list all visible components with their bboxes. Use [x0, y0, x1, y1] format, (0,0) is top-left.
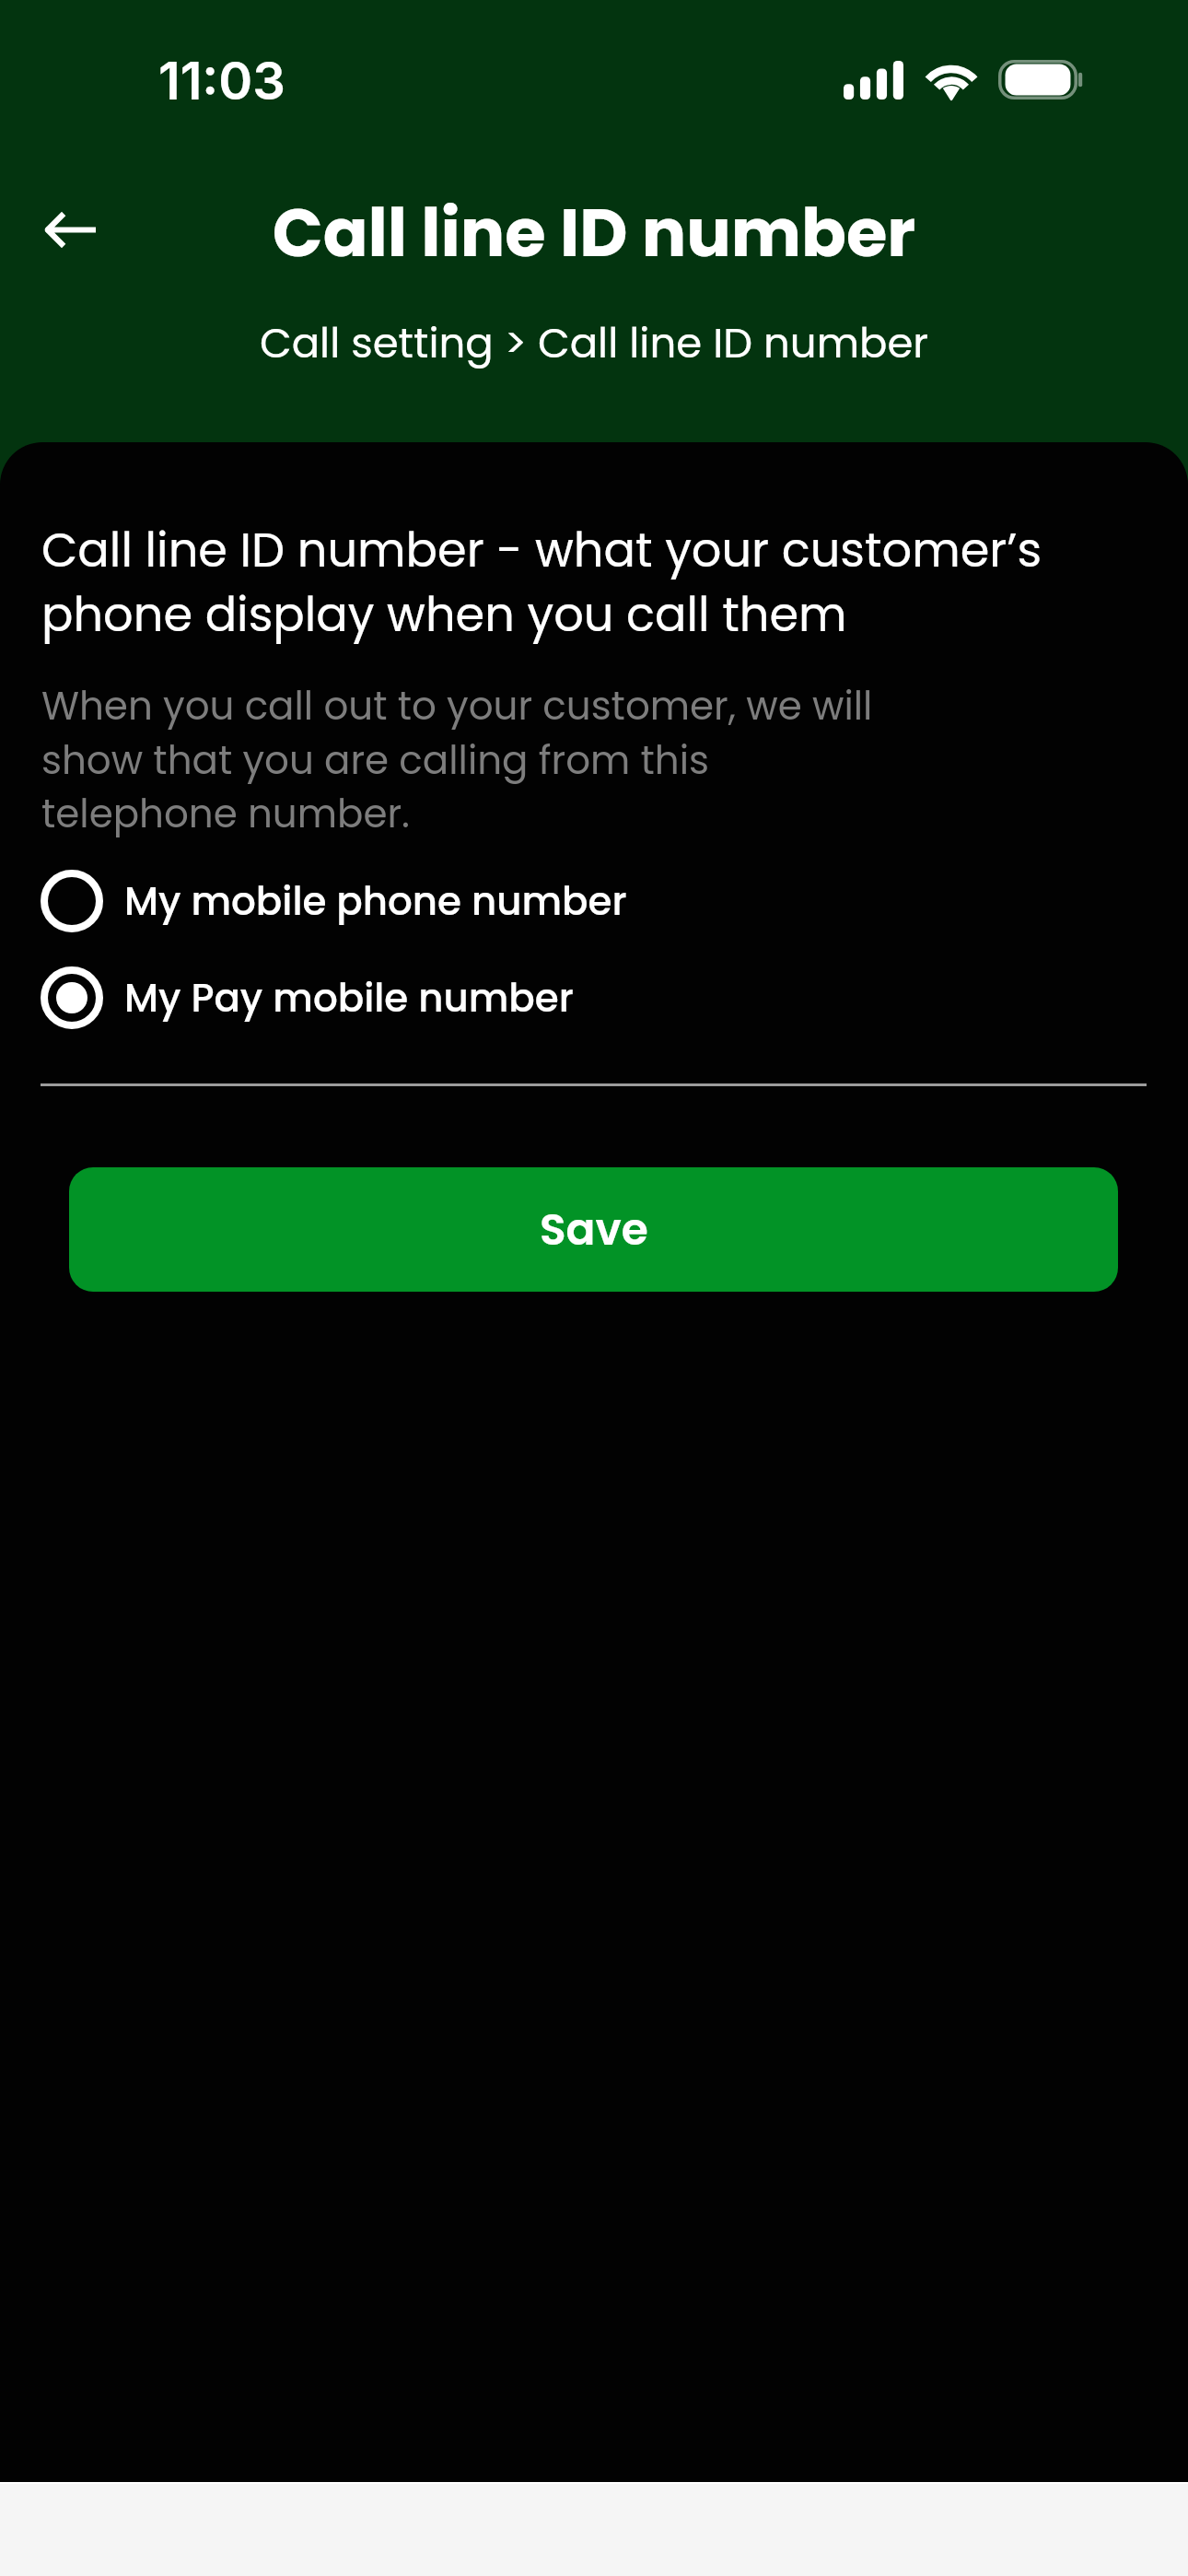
staticText: 11:03	[158, 50, 285, 112]
staticText: Call line ID number - what your customer…	[41, 517, 1101, 648]
staticText: Call line ID number	[0, 186, 1188, 279]
button[interactable]: Back	[22, 181, 118, 277]
button[interactable]: My Pay mobile number	[0, 966, 1188, 1029]
staticText: My Pay mobile number	[124, 971, 574, 1025]
button[interactable]: My mobile phone number	[0, 870, 1188, 932]
staticText: Call setting > Call line ID number	[0, 314, 1188, 372]
button[interactable]: Save	[69, 1167, 1118, 1292]
staticText: When you call out to your customer, we w…	[41, 679, 903, 840]
staticText: My mobile phone number	[124, 874, 627, 929]
staticText: Save	[540, 1200, 648, 1260]
